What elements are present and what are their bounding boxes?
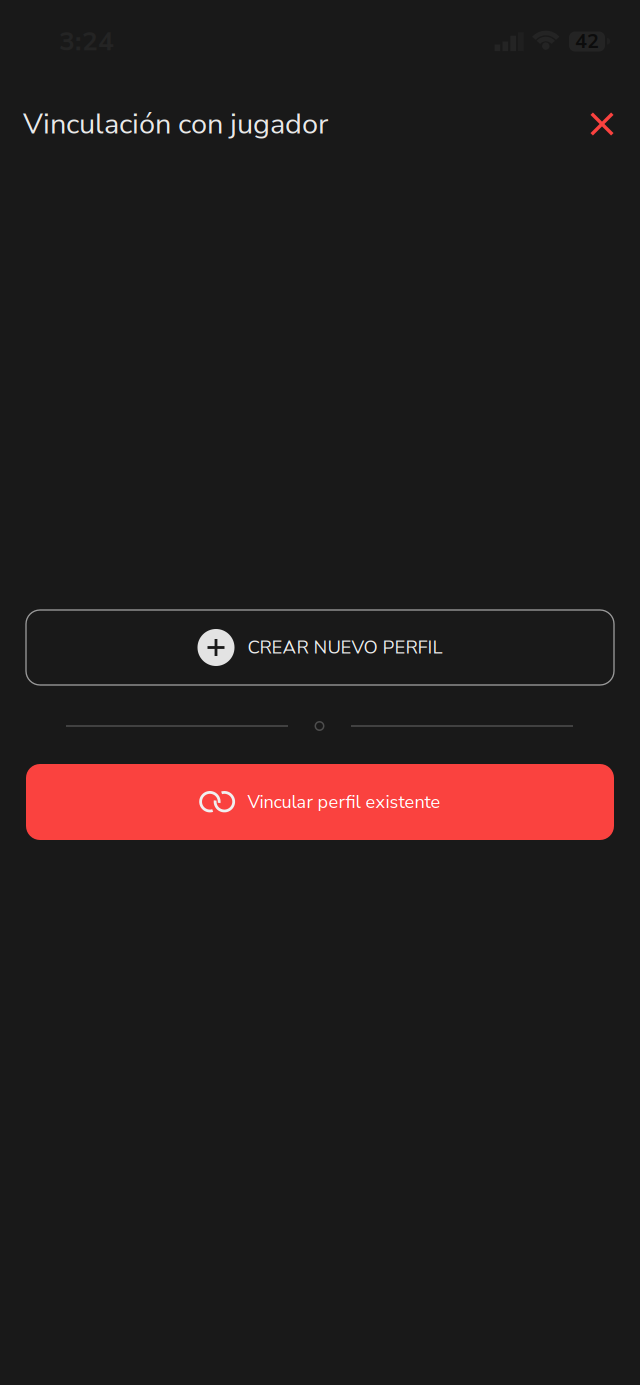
staticText: CREAR NUEVO PERFIL — [247, 635, 442, 660]
staticText: Vinculación con jugador — [23, 104, 328, 144]
button[interactable]: CREAR NUEVO PERFIL — [26, 610, 614, 685]
staticText: Vincular perfil existente — [247, 790, 440, 814]
button[interactable]: Cerrar — [578, 100, 626, 148]
button[interactable]: Vincular perfil existente — [26, 764, 614, 840]
staticText: 42 — [575, 28, 599, 55]
staticText: 3:24 — [59, 23, 114, 59]
